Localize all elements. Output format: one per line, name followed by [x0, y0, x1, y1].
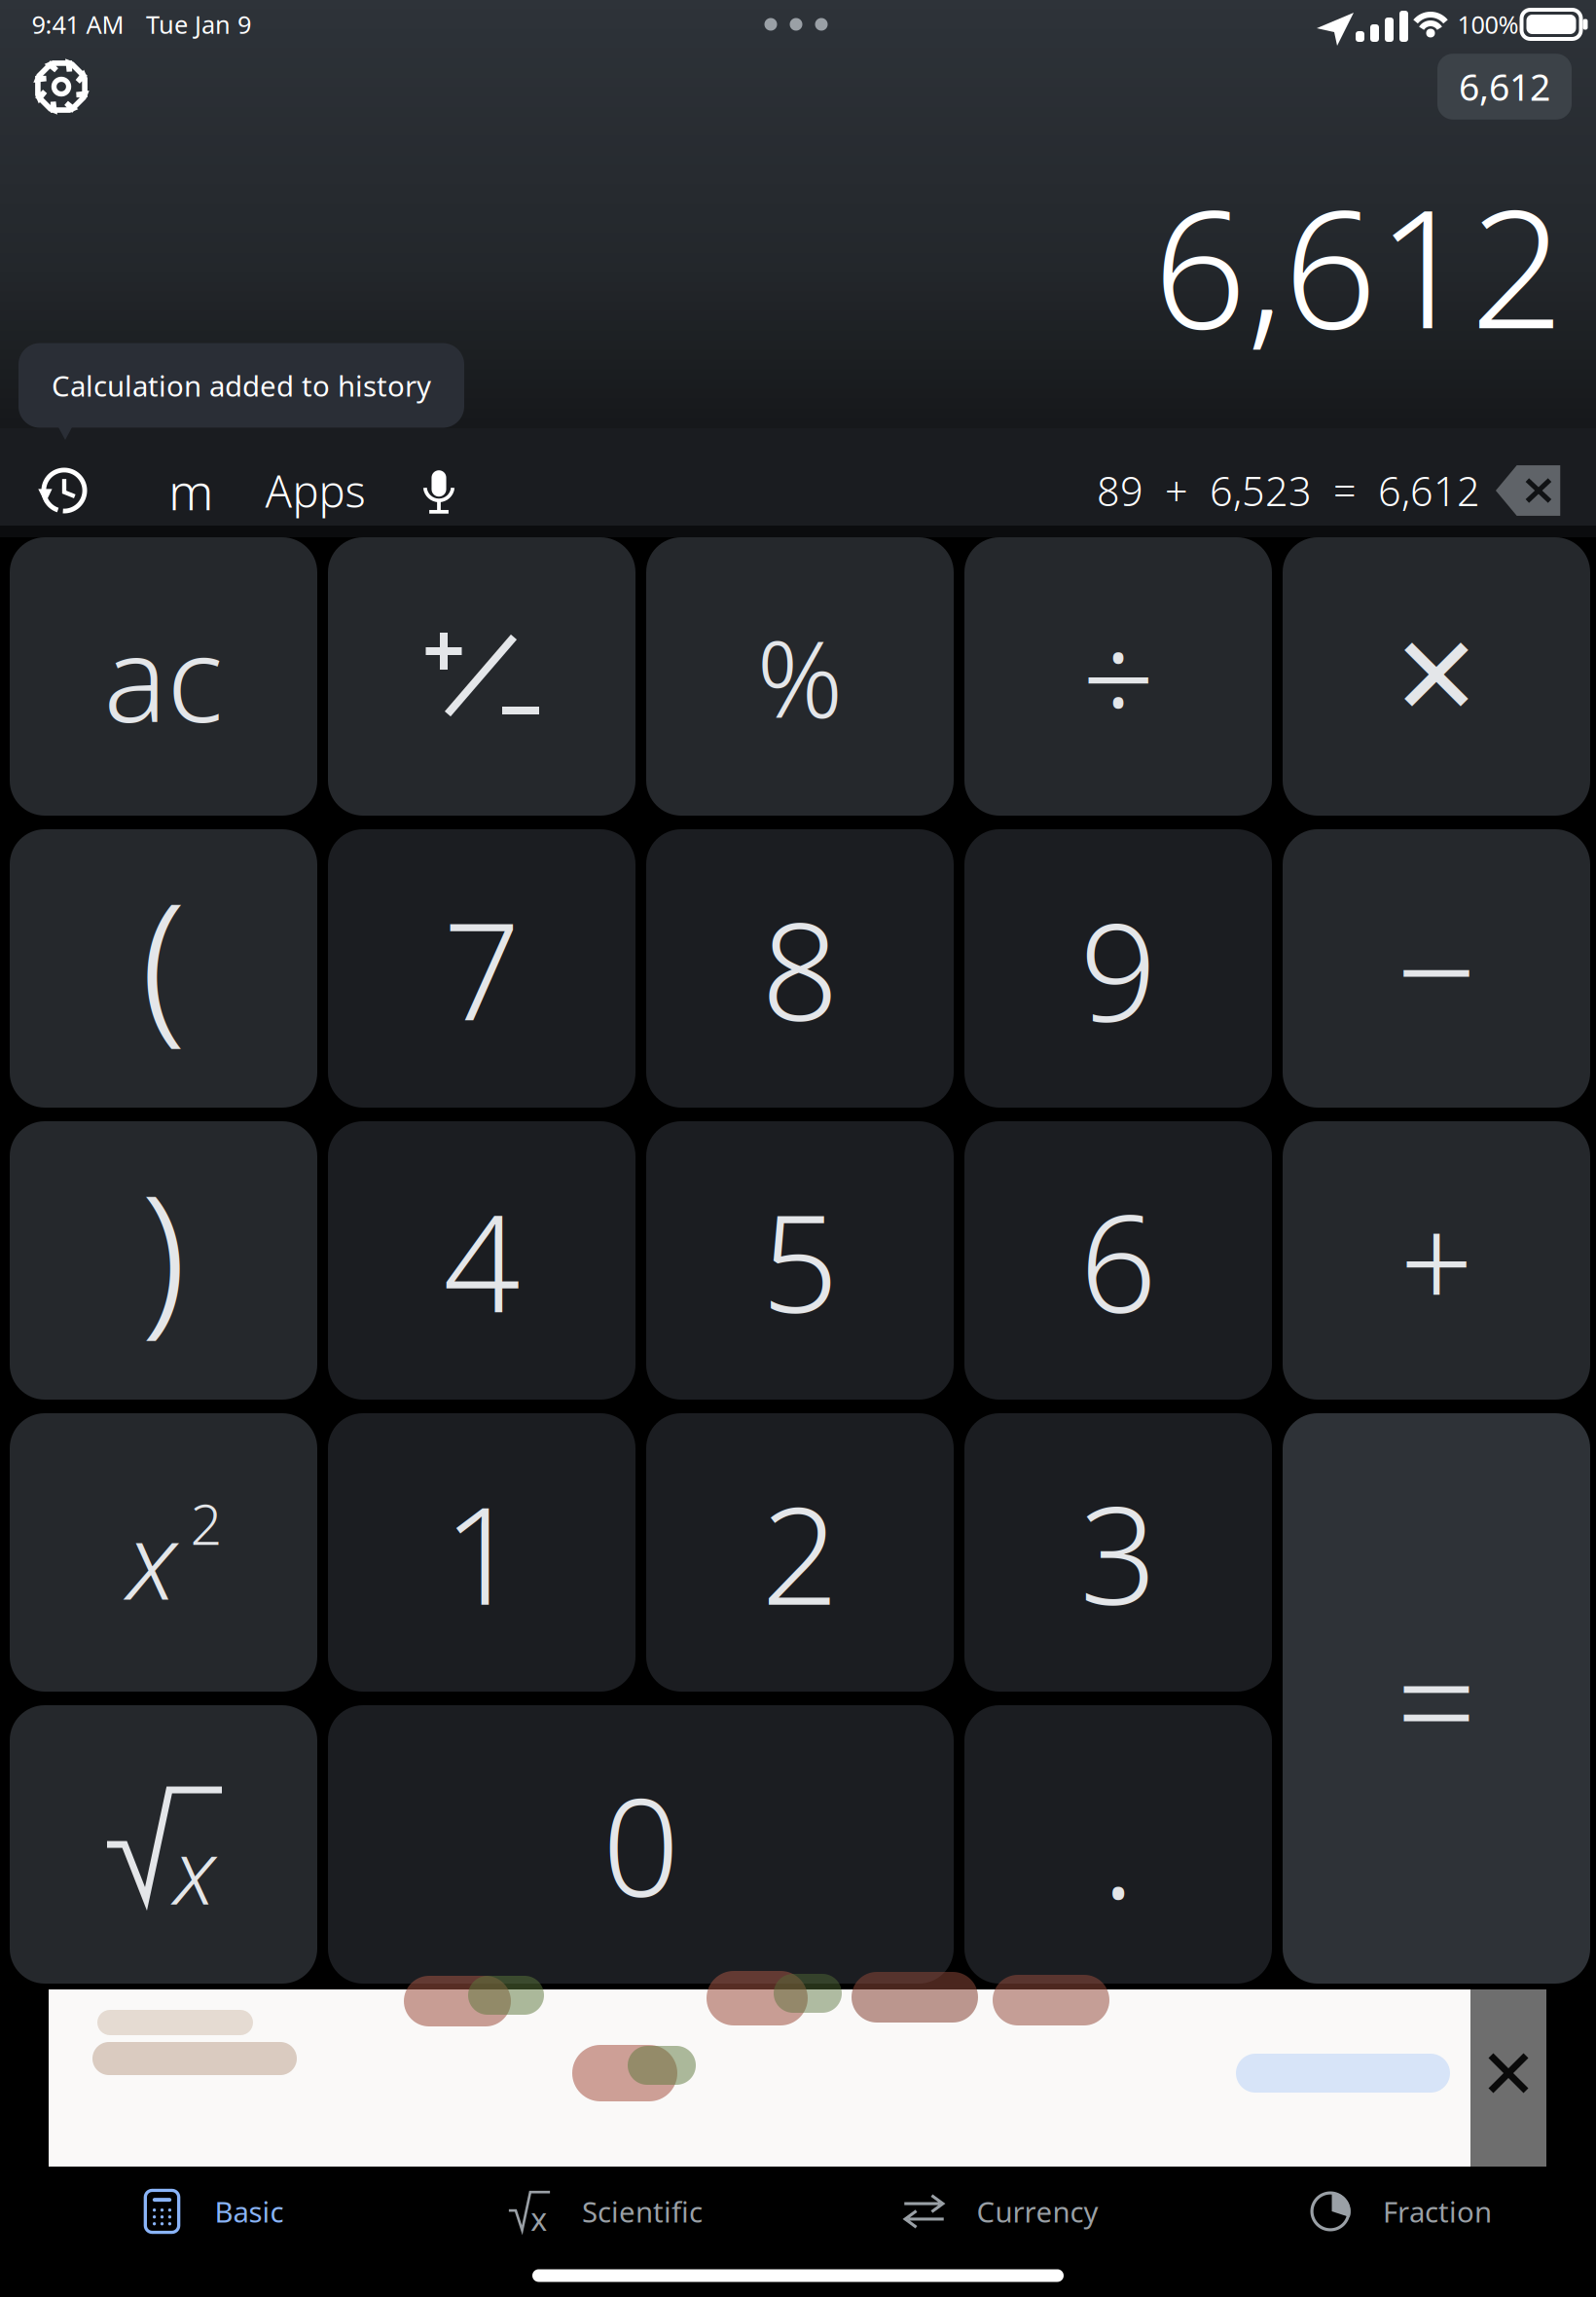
staticText: Apps	[265, 461, 365, 520]
button[interactable]: 2	[646, 1413, 954, 1692]
staticText: .	[1102, 1755, 1135, 1936]
button[interactable]: Memory	[137, 447, 244, 534]
button[interactable]: Basic	[111, 2163, 313, 2260]
staticText: x	[531, 2198, 547, 2239]
button[interactable]: +	[1283, 1121, 1590, 1400]
button[interactable]: ✕	[1283, 537, 1590, 816]
staticText: (	[141, 849, 186, 1068]
button[interactable]: .	[964, 1705, 1272, 1984]
button[interactable]: Settings	[15, 44, 108, 129]
button[interactable]: 4	[328, 1121, 635, 1400]
staticText: )	[141, 1141, 186, 1360]
button[interactable]: History	[16, 447, 113, 534]
button[interactable]: (	[10, 829, 317, 1108]
staticText: 100%	[1457, 8, 1519, 41]
button[interactable]: 3	[964, 1413, 1272, 1692]
button[interactable]: )	[10, 1121, 317, 1400]
staticText: Scientific	[582, 2192, 703, 2230]
button[interactable]: x	[10, 1705, 317, 1984]
staticText: 6	[1080, 1171, 1157, 1350]
staticText: 8	[762, 879, 838, 1058]
button[interactable]	[328, 537, 635, 816]
staticText: 6,612	[1459, 62, 1550, 111]
button[interactable]: 8	[646, 829, 954, 1108]
button[interactable]: ac	[10, 537, 317, 816]
staticText: 0	[602, 1755, 679, 1934]
staticText: %	[757, 606, 843, 747]
button[interactable]: 9	[964, 829, 1272, 1108]
staticText: ÷	[1082, 591, 1155, 762]
staticText: Calculation added to history	[52, 366, 431, 404]
button[interactable]: Apps	[228, 447, 403, 534]
staticText: 2	[190, 1486, 222, 1560]
staticText: −	[1396, 875, 1477, 1062]
staticText: 2	[762, 1463, 838, 1642]
staticText: ac	[104, 598, 223, 755]
button[interactable]: ÷	[964, 537, 1272, 816]
button[interactable]: 6	[964, 1121, 1272, 1400]
button[interactable]: 0	[328, 1705, 954, 1984]
button[interactable]: %	[646, 537, 954, 816]
staticText: 3	[1080, 1463, 1157, 1642]
staticText: 89 + 6,523 = 6,612	[1097, 464, 1480, 517]
button[interactable]: x	[479, 2163, 732, 2260]
button[interactable]: 1	[328, 1413, 635, 1692]
button[interactable]: Voice input	[390, 447, 488, 534]
button[interactable]: x	[10, 1413, 317, 1692]
staticText: x	[127, 1488, 177, 1629]
staticText: 9:41 AM	[32, 8, 124, 41]
staticText: 1	[443, 1463, 520, 1642]
button[interactable]: Currency	[873, 2163, 1127, 2260]
button[interactable]: Fraction	[1280, 2163, 1521, 2260]
staticText: 7	[443, 879, 520, 1058]
staticText: 6,612	[1153, 156, 1564, 373]
button[interactable]: Close ad	[1470, 1989, 1546, 2167]
staticText: ✕	[1391, 615, 1482, 738]
staticText: Basic	[215, 2192, 284, 2230]
staticText: Currency	[977, 2192, 1098, 2230]
button[interactable]: Delete	[1482, 447, 1579, 534]
staticText: 9	[1080, 879, 1157, 1058]
staticText: Fraction	[1383, 2192, 1492, 2230]
button[interactable]: =	[1283, 1413, 1590, 1984]
staticText: 5	[762, 1171, 838, 1350]
staticText: m	[168, 457, 213, 524]
staticText: =	[1396, 1604, 1477, 1792]
staticText: 4	[443, 1171, 520, 1350]
staticText: +	[1400, 1175, 1473, 1346]
button[interactable]: 5	[646, 1121, 954, 1400]
button[interactable]: 7	[328, 829, 635, 1108]
button[interactable]: −	[1283, 829, 1590, 1108]
staticText: x	[174, 1810, 216, 1929]
button[interactable]: 6,612	[1437, 54, 1572, 120]
staticText: Tue Jan 9	[146, 8, 251, 41]
